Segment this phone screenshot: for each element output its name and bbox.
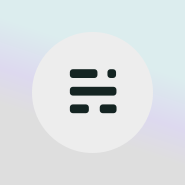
button[interactable]: Menu: [32, 32, 153, 153]
